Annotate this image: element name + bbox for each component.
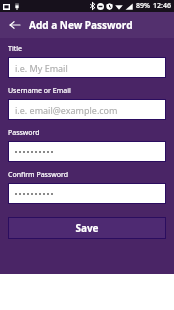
staticText: 12:46 (153, 1, 171, 11)
staticText: i.e. email@example.com (15, 104, 118, 116)
staticText: Add a New Password (29, 18, 133, 32)
staticText: Save (75, 221, 99, 235)
button[interactable]: i.e. My Email (8, 57, 166, 78)
staticText: Password (8, 128, 40, 138)
staticText: i.e. My Email (15, 62, 68, 74)
button[interactable] (8, 183, 166, 204)
button[interactable] (8, 141, 166, 162)
button[interactable]: Back (5, 15, 25, 35)
button[interactable]: i.e. email@example.com (8, 99, 166, 120)
staticText: 89% (136, 1, 150, 11)
staticText: Title (8, 44, 22, 54)
button[interactable]: Save (8, 217, 166, 239)
staticText: Username or Email (8, 86, 71, 96)
staticText: Confirm Password (8, 170, 69, 180)
